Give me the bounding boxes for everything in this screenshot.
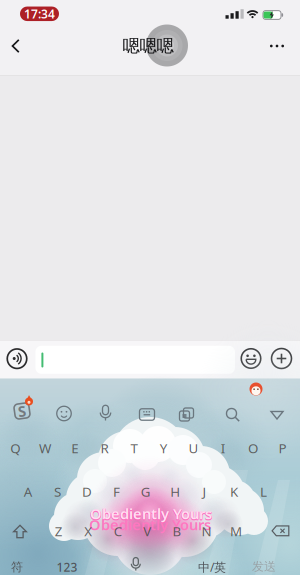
button[interactable]: O [240, 430, 266, 466]
button[interactable] [271, 525, 289, 537]
staticText: S [54, 483, 61, 500]
staticText: V [143, 522, 151, 540]
button[interactable]: 符 [2, 556, 32, 575]
button[interactable] [35, 346, 235, 374]
button[interactable] [6, 35, 28, 57]
button[interactable]: 123 [51, 556, 83, 575]
staticText: S [18, 401, 26, 421]
staticText: B [172, 522, 181, 540]
staticText: W [39, 439, 51, 457]
staticText: E [71, 439, 78, 457]
button[interactable]: S [11, 400, 33, 422]
staticText: Q [10, 439, 20, 457]
staticText: M [230, 522, 242, 540]
staticText: Z [55, 522, 63, 540]
staticText: 123 [56, 559, 77, 575]
button[interactable] [178, 406, 195, 422]
staticText: 符 [11, 560, 23, 574]
button[interactable]: Q [2, 430, 28, 466]
staticText: Obediently Yours [89, 515, 211, 534]
button[interactable]: R [91, 430, 117, 466]
button[interactable]: P [270, 430, 296, 466]
button[interactable] [7, 349, 27, 369]
staticText: H [170, 483, 180, 500]
button[interactable]: H [162, 473, 188, 509]
button[interactable] [13, 524, 27, 538]
button[interactable]: A [15, 473, 41, 509]
staticText: F [113, 483, 120, 500]
button[interactable] [271, 348, 291, 368]
button[interactable]: Z [46, 513, 72, 549]
staticText: R [100, 439, 108, 457]
staticText: Obediently Yours [90, 504, 212, 523]
staticText: Obediently Yours [91, 504, 213, 524]
staticText: G [141, 483, 151, 500]
button[interactable] [225, 407, 240, 422]
staticText: A [24, 483, 33, 500]
staticText: 发送 [252, 559, 276, 574]
button[interactable] [249, 382, 262, 395]
button[interactable]: X [75, 513, 101, 549]
button[interactable] [264, 36, 290, 56]
button[interactable]: G [133, 473, 159, 509]
button[interactable]: J [192, 473, 218, 509]
button[interactable]: L [250, 473, 276, 509]
button[interactable]: F [103, 473, 129, 509]
button[interactable]: E [62, 430, 88, 466]
staticText: K [230, 483, 238, 500]
staticText: Obediently Yours [90, 505, 212, 525]
button[interactable]: T [121, 430, 147, 466]
staticText: P [279, 439, 287, 457]
button[interactable]: V [134, 513, 160, 549]
staticText: X [84, 522, 92, 540]
button[interactable]: S [45, 473, 71, 509]
button[interactable]: B [164, 513, 190, 549]
staticText: Y [160, 439, 168, 457]
button[interactable]: C [105, 513, 131, 549]
staticText: T [131, 439, 138, 457]
button[interactable]: 17:34 [20, 7, 59, 21]
staticText: Obediently Yours [89, 504, 211, 524]
button[interactable] [56, 405, 72, 421]
button[interactable] [139, 407, 155, 421]
button[interactable]: 发送 [247, 555, 281, 575]
staticText: U [188, 439, 198, 457]
staticText: N [201, 522, 211, 540]
button[interactable]: D [74, 473, 100, 509]
staticText: C [114, 522, 122, 540]
button[interactable]: 中/英 [195, 556, 229, 575]
staticText: I [221, 439, 226, 457]
button[interactable]: K [221, 473, 247, 509]
staticText: L [260, 483, 267, 500]
button[interactable]: M [223, 513, 249, 549]
staticText: O [248, 439, 258, 457]
button[interactable] [146, 24, 188, 66]
button[interactable] [241, 348, 261, 368]
button[interactable]: U [180, 430, 206, 466]
button[interactable] [91, 553, 181, 575]
staticText: J [203, 483, 207, 500]
button[interactable]: W [32, 430, 58, 466]
staticText: 嗯嗯嗯 [122, 35, 173, 57]
button[interactable] [269, 410, 284, 421]
staticText: 中/英 [198, 559, 226, 575]
staticText: D [82, 483, 92, 500]
button[interactable] [97, 404, 113, 422]
staticText: 17:34 [24, 6, 55, 22]
button[interactable]: I [210, 430, 236, 466]
button[interactable]: N [193, 513, 219, 549]
button[interactable]: Y [151, 430, 177, 466]
